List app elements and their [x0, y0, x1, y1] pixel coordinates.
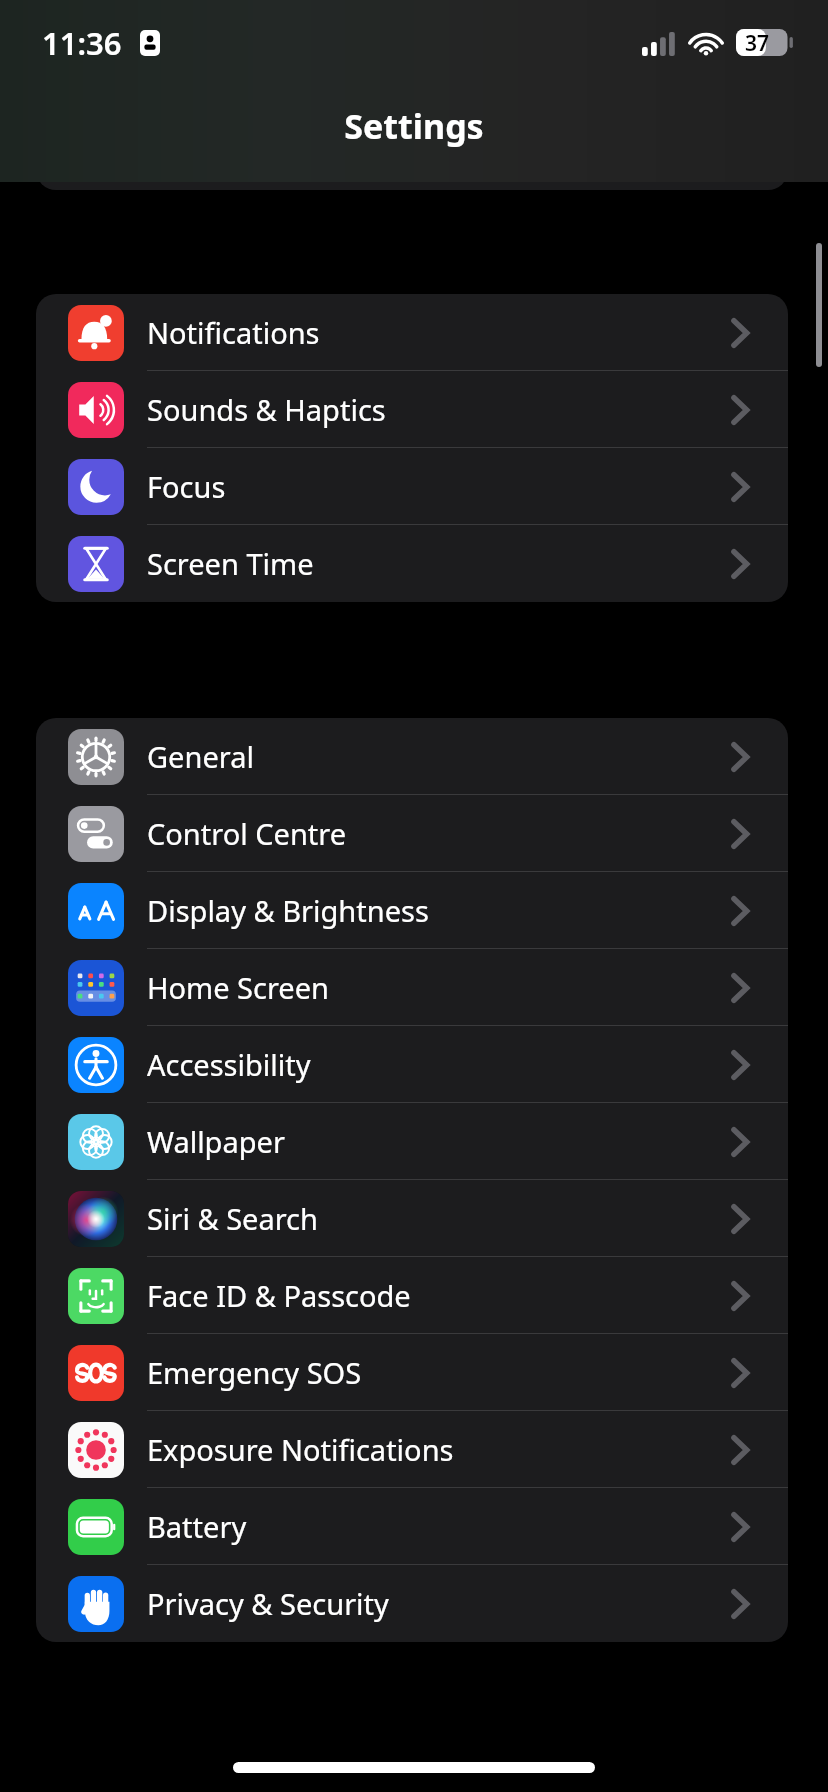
staticText: Display & Brightness: [147, 891, 429, 930]
button[interactable]: Privacy & Security: [36, 1565, 788, 1642]
staticText: 37: [745, 29, 770, 58]
staticText: Wallpaper: [147, 1122, 285, 1161]
staticText: Siri & Search: [147, 1199, 318, 1238]
button[interactable]: Siri & Search: [36, 1180, 788, 1257]
button[interactable]: Focus: [36, 448, 788, 525]
staticText: Emergency SOS: [147, 1353, 362, 1392]
button[interactable]: Battery: [36, 1488, 788, 1565]
button[interactable]: Accessibility: [36, 1026, 788, 1103]
button[interactable]: General: [36, 718, 788, 795]
button[interactable]: VPN: [36, 86, 788, 163]
staticText: Screen Time: [147, 544, 314, 583]
button[interactable]: Wallpaper: [36, 1103, 788, 1180]
staticText: Accessibility: [147, 1045, 311, 1084]
button[interactable]: Face ID & Passcode: [36, 1257, 788, 1334]
staticText: Focus: [147, 467, 226, 506]
button[interactable]: Notifications: [36, 294, 788, 371]
staticText: Notifications: [147, 313, 320, 352]
staticText: Exposure Notifications: [147, 1430, 454, 1469]
button[interactable]: Home Screen: [36, 949, 788, 1026]
staticText: Battery: [147, 1507, 247, 1546]
staticText: Face ID & Passcode: [147, 1276, 411, 1315]
button[interactable]: Control Centre: [36, 795, 788, 872]
button[interactable]: Display & Brightness: [36, 872, 788, 949]
staticText: Privacy & Security: [147, 1584, 389, 1623]
staticText: Settings: [0, 103, 828, 149]
staticText: 11:36: [42, 22, 122, 64]
staticText: Sounds & Haptics: [147, 390, 386, 429]
staticText: General: [147, 737, 254, 776]
staticText: Control Centre: [147, 814, 347, 853]
button[interactable]: Sounds & Haptics: [36, 371, 788, 448]
button[interactable]: Screen Time: [36, 525, 788, 602]
button[interactable]: Exposure Notifications: [36, 1411, 788, 1488]
staticText: Home Screen: [147, 968, 329, 1007]
button[interactable]: Emergency SOS: [36, 1334, 788, 1411]
